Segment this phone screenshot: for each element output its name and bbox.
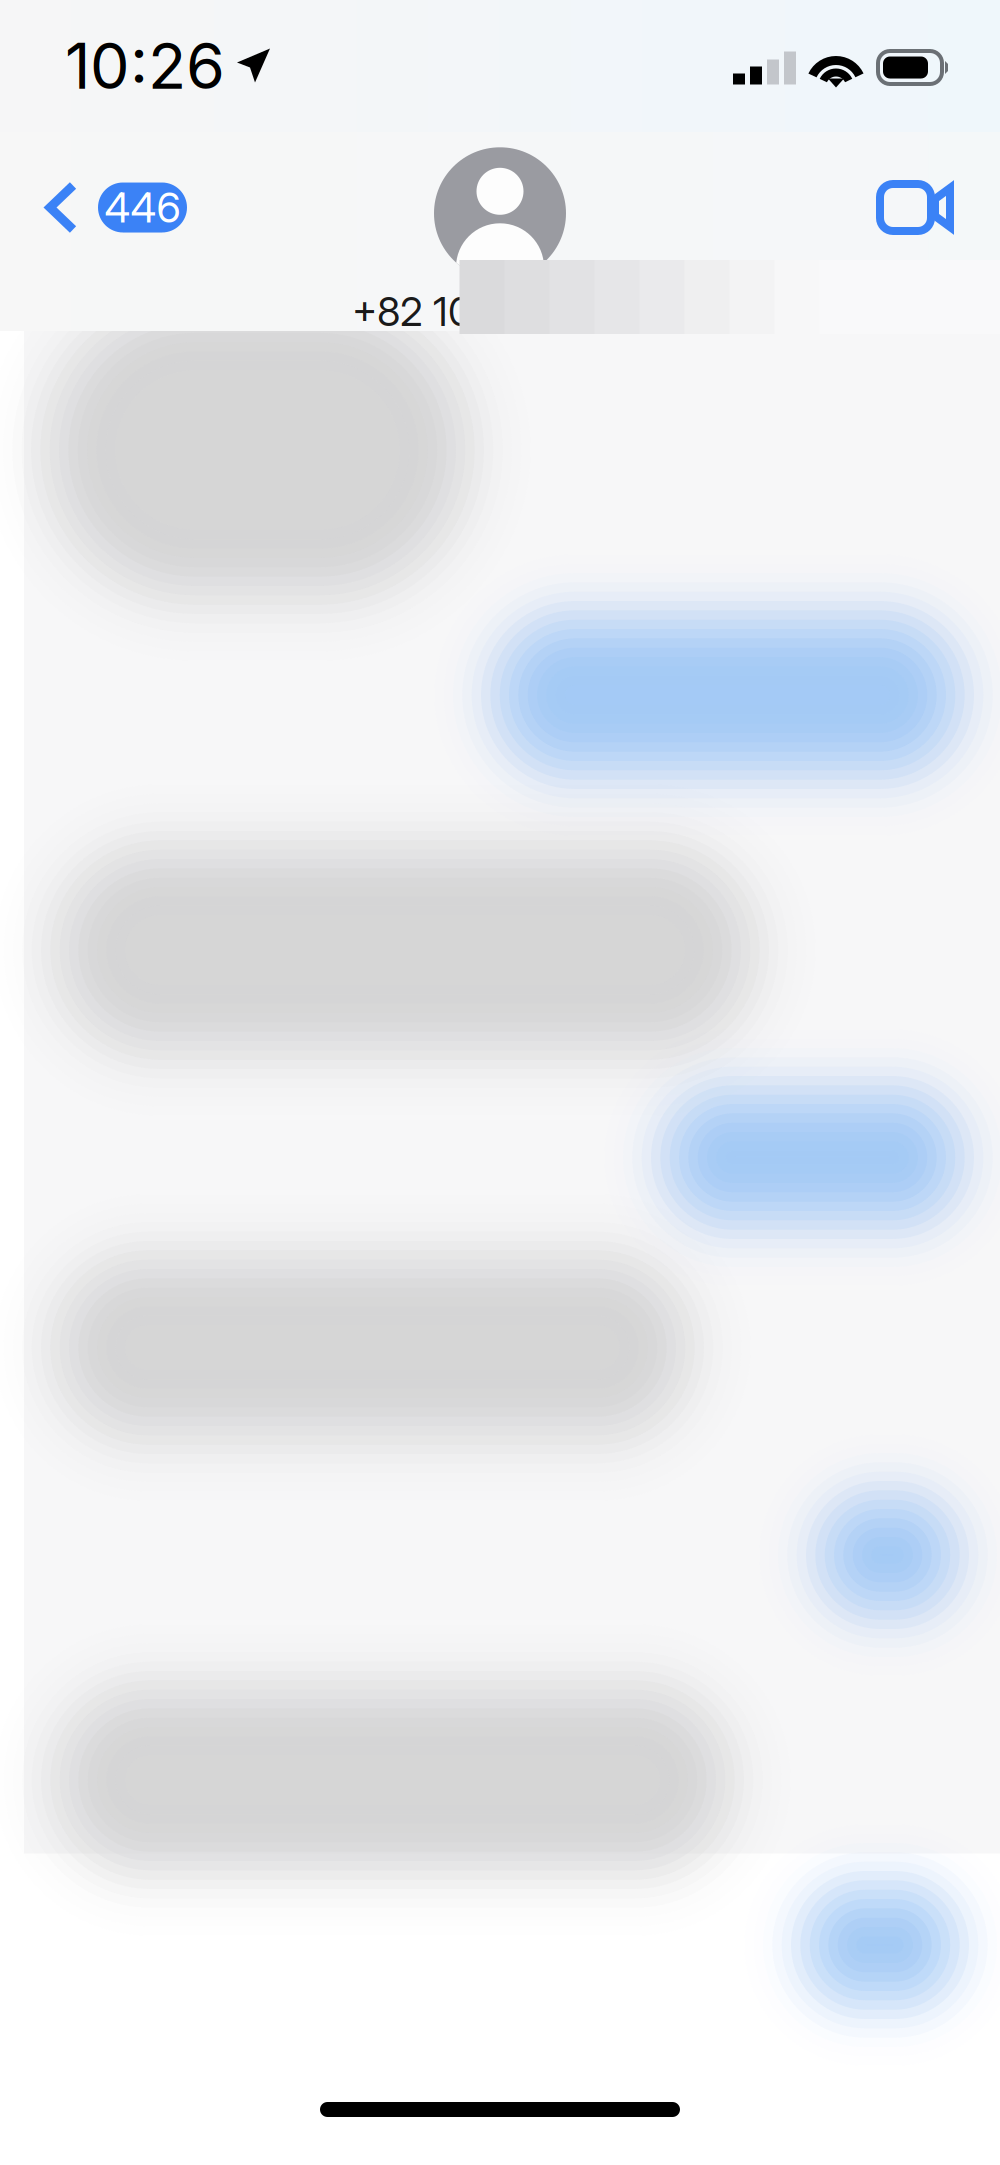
button[interactable]: 446 bbox=[0, 180, 203, 282]
button[interactable]: FaceTime video call bbox=[882, 184, 1000, 279]
staticText: 446 bbox=[104, 182, 180, 232]
staticText: 10:26 bbox=[65, 28, 225, 104]
staticText: +82 10-5678-1234 bbox=[352, 287, 684, 336]
